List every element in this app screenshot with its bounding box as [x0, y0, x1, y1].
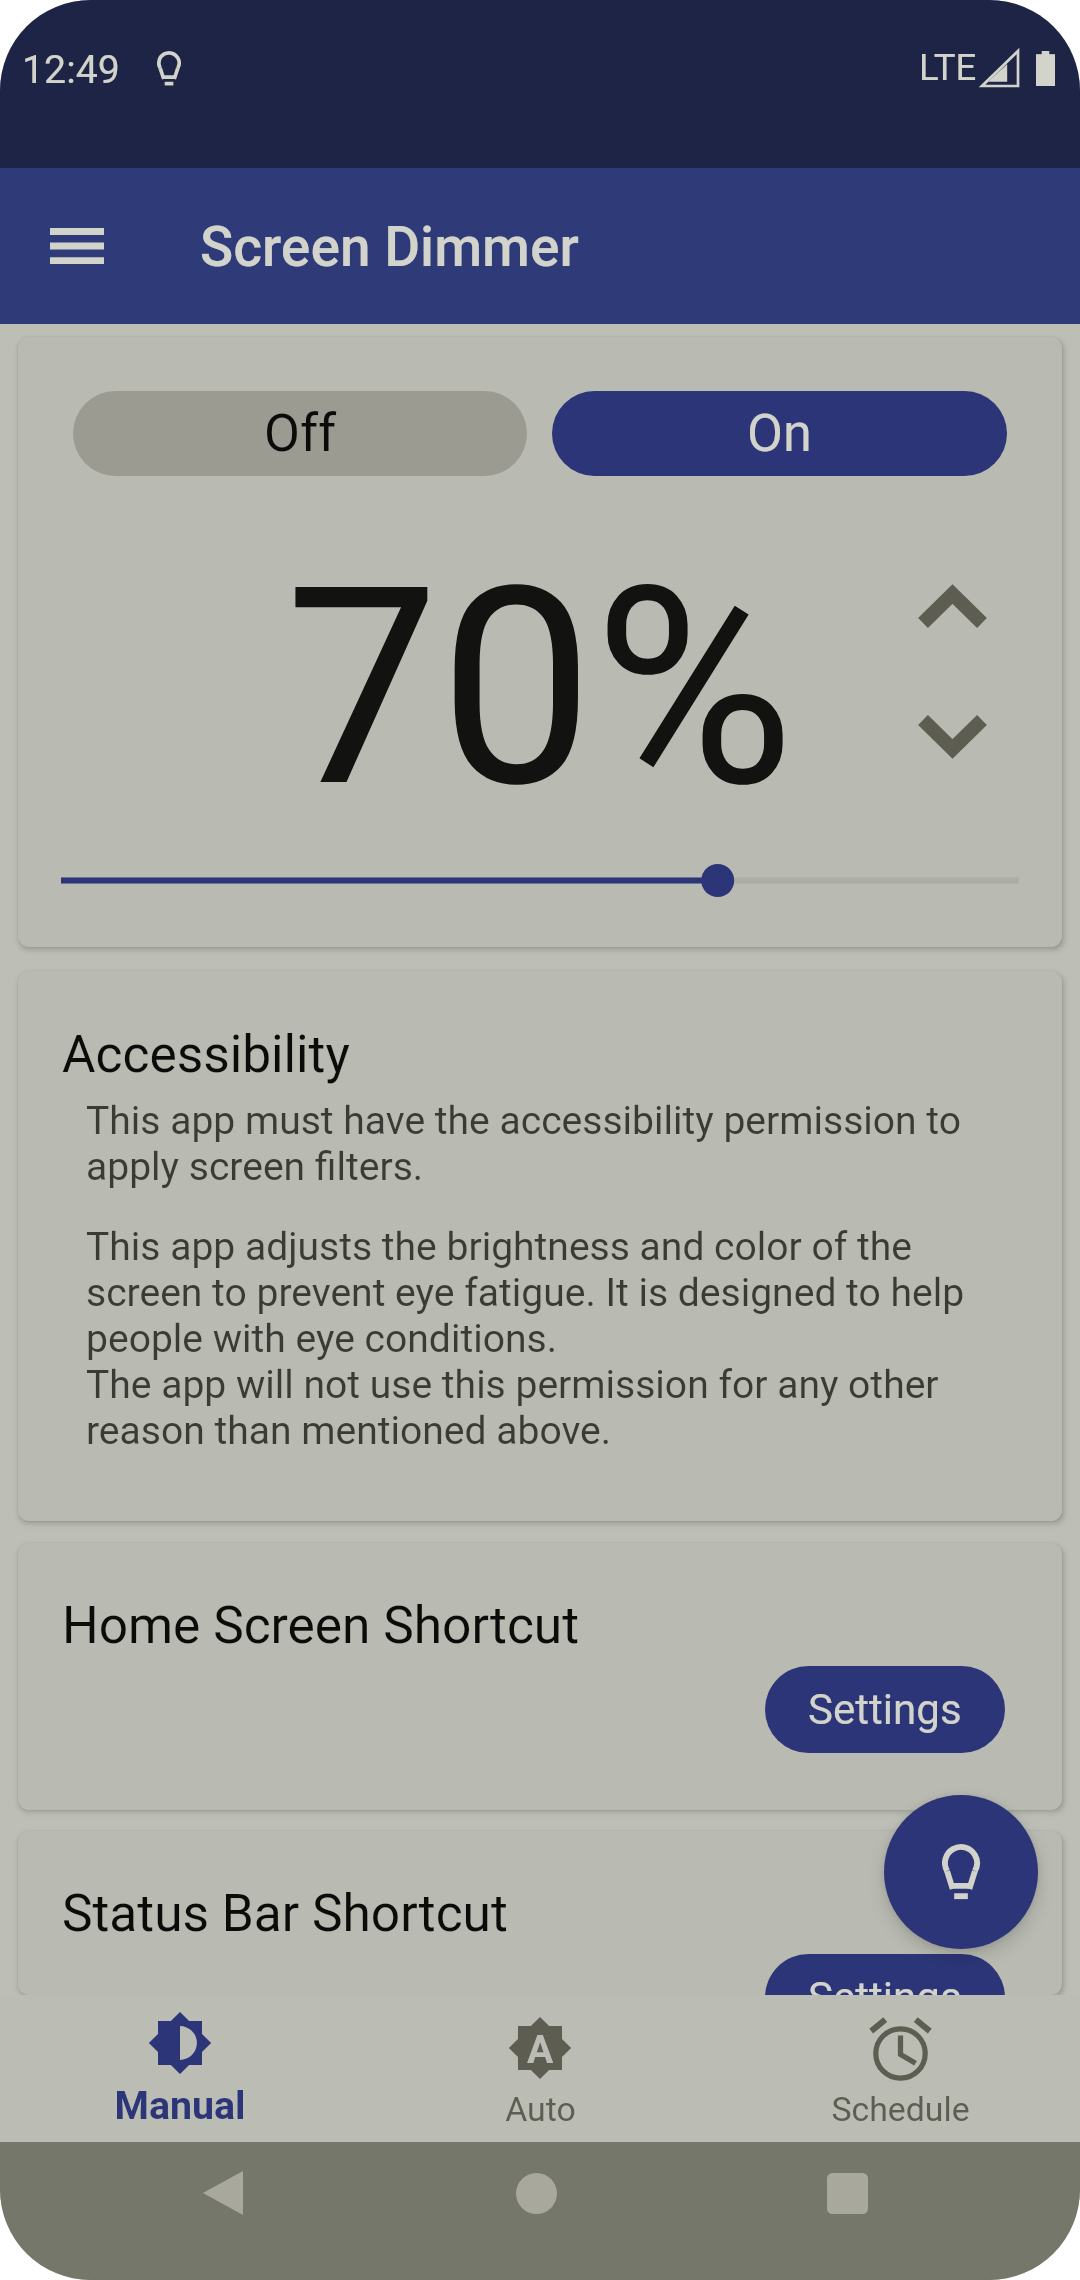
button[interactable]: Recent apps — [795, 2162, 900, 2224]
staticText: Manual — [114, 2083, 246, 2129]
button[interactable]: Back — [170, 2162, 275, 2224]
staticText: 70% — [285, 527, 795, 849]
button[interactable]: Schedule — [720, 1995, 1080, 2142]
staticText: Home Screen Shortcut — [62, 1595, 579, 1655]
staticText: Accessibility — [62, 1024, 350, 1084]
staticText: This app adjusts the brightness and colo… — [86, 1224, 965, 1454]
staticText: On — [747, 403, 812, 464]
button[interactable]: Home — [484, 2162, 589, 2224]
staticText: Screen Dimmer — [200, 215, 579, 279]
staticText: A — [527, 2027, 554, 2073]
button[interactable]: Manual — [0, 1995, 360, 2142]
staticText: LTE — [919, 46, 977, 89]
button[interactable] — [61, 861, 1019, 900]
staticText: Off — [264, 403, 337, 464]
staticText: Status Bar Shortcut — [62, 1883, 508, 1943]
staticText: Schedule — [831, 2090, 970, 2130]
staticText: Auto — [505, 2090, 576, 2130]
button[interactable]: Open navigation menu — [26, 168, 128, 324]
staticText: 12:49 — [22, 47, 120, 93]
button[interactable]: Settings — [765, 1954, 1005, 1995]
button[interactable]: Settings — [765, 1666, 1005, 1753]
button[interactable]: Off — [73, 391, 527, 476]
staticText: Settings — [808, 1685, 962, 1734]
button[interactable]: A — [360, 1995, 720, 2142]
button[interactable]: Increase brightness — [910, 578, 995, 639]
button[interactable]: On — [552, 391, 1007, 476]
button[interactable]: Decrease brightness — [910, 704, 995, 765]
staticText: Settings — [808, 1973, 962, 1995]
staticText: This app must have the accessibility per… — [86, 1098, 962, 1190]
button[interactable]: Toggle screen dimmer — [884, 1795, 1038, 1949]
